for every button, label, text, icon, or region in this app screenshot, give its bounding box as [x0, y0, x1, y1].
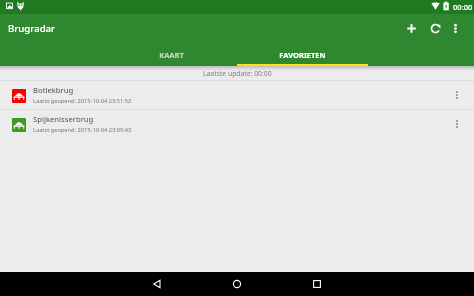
- button[interactable]: More options: [445, 13, 465, 43]
- button[interactable]: Back: [117, 272, 197, 296]
- staticText: Laatst geopend: 2015-10-04 23:51:52: [33, 97, 132, 105]
- staticText: Spijkenisserbrug: [33, 114, 94, 124]
- staticText: Laatst geopend: 2015-10-04 23:05:43: [33, 126, 132, 134]
- button[interactable]: KAART: [106, 44, 237, 66]
- button[interactable]: FAVORIETEN: [237, 44, 368, 66]
- button[interactable]: Botlekbrug: [0, 81, 474, 109]
- staticText: KAART: [159, 50, 184, 60]
- button[interactable]: Item menu: [440, 81, 474, 109]
- button[interactable]: Spijkenisserbrug: [0, 110, 474, 138]
- button[interactable]: Add: [401, 13, 421, 43]
- staticText: 00:00: [453, 2, 473, 12]
- staticText: FAVORIETEN: [279, 50, 326, 60]
- button[interactable]: Recents: [277, 272, 357, 296]
- staticText: Botlekbrug: [33, 85, 74, 95]
- button[interactable]: Home: [197, 272, 277, 296]
- staticText: Brugradar: [8, 22, 56, 35]
- button[interactable]: Refresh: [425, 13, 445, 43]
- button[interactable]: Item menu: [440, 110, 474, 138]
- staticText: Laatste update: 00:00: [203, 69, 272, 78]
